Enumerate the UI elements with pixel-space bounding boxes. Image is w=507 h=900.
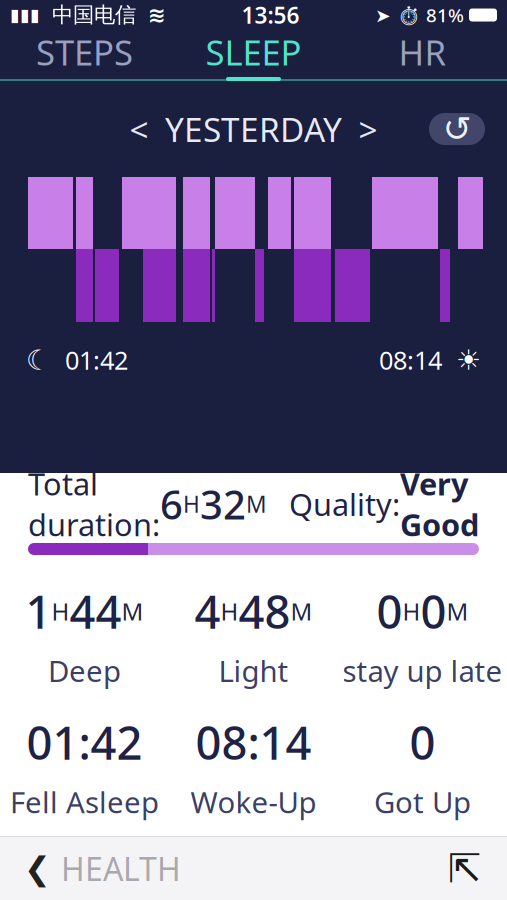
staticText: YESTERDAY: [165, 107, 342, 151]
button[interactable]: Next day: [348, 107, 388, 151]
staticText: ☀: [456, 344, 481, 376]
staticText: HR: [398, 29, 446, 75]
staticText: Fell Asleep: [10, 782, 159, 821]
staticText: Got Up: [374, 782, 471, 821]
staticText: ❮: [24, 850, 51, 887]
button[interactable]: STEPS: [0, 30, 169, 74]
staticText: ☾: [26, 344, 51, 376]
staticText: 1: [25, 581, 51, 641]
staticText: <: [129, 107, 148, 151]
staticText: 0: [409, 712, 435, 772]
staticText: H: [183, 489, 200, 519]
button[interactable]: HR: [338, 30, 507, 74]
staticText: M: [446, 595, 468, 627]
staticText: 32: [200, 477, 246, 530]
staticText: 01:42: [26, 712, 142, 772]
staticText: H: [220, 595, 238, 627]
staticText: 44: [69, 581, 121, 641]
staticText: ≋: [148, 3, 166, 27]
button[interactable]: ❮: [0, 835, 181, 900]
staticText: 中国电信: [40, 2, 148, 28]
staticText: stay up late: [342, 651, 502, 690]
staticText: STEPS: [36, 29, 133, 75]
staticText: 08:14: [195, 712, 311, 772]
staticText: >: [358, 107, 377, 151]
button[interactable]: Share: [439, 842, 507, 894]
staticText: Deep: [48, 651, 121, 690]
staticText: M: [246, 489, 267, 519]
staticText: H: [402, 595, 420, 627]
staticText: ⇱: [448, 846, 482, 891]
staticText: ➤ ⏱ 81%: [375, 3, 464, 27]
staticText: Very Good: [400, 463, 479, 545]
staticText: SLEEP: [205, 29, 301, 75]
staticText: Total duration:: [28, 463, 160, 545]
staticText: Light: [218, 651, 288, 690]
staticText: 0: [420, 581, 446, 641]
staticText: M: [290, 595, 312, 627]
staticText: 6: [160, 477, 183, 530]
staticText: 4: [194, 581, 220, 641]
button[interactable]: Refresh: [429, 113, 485, 145]
button[interactable]: SLEEP: [169, 30, 338, 74]
staticText: 08:14: [379, 343, 456, 377]
staticText: ↺: [442, 109, 471, 149]
staticText: ▮▮▮: [10, 5, 40, 25]
staticText: 13:56: [241, 0, 299, 30]
staticText: M: [121, 595, 143, 627]
staticText: 0: [376, 581, 402, 641]
staticText: HEALTH: [61, 847, 181, 890]
staticText: Quality:: [289, 484, 400, 524]
button[interactable]: Previous day: [119, 107, 159, 151]
staticText: Woke-Up: [190, 782, 316, 821]
staticText: H: [51, 595, 69, 627]
staticText: 48: [238, 581, 290, 641]
staticText: 01:42: [51, 343, 128, 377]
